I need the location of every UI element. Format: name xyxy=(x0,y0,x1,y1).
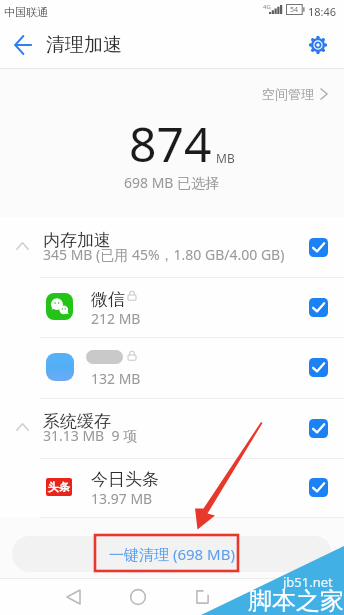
button[interactable]: Selected xyxy=(309,478,328,497)
staticText: 132 MB xyxy=(91,369,141,388)
button[interactable]: 内存加速 xyxy=(0,217,344,277)
button[interactable]: 微信 xyxy=(0,277,344,337)
staticText: 4G xyxy=(263,3,271,11)
staticText: 今日头条 xyxy=(91,469,159,490)
staticText: 空间管理 xyxy=(262,86,314,102)
button[interactable]: Selected xyxy=(309,298,328,317)
staticText: 头条 xyxy=(48,480,70,494)
button[interactable]: Back xyxy=(59,583,87,611)
button[interactable]: Selected xyxy=(309,358,328,377)
staticText: 54 xyxy=(290,5,299,15)
button[interactable]: Recents xyxy=(188,583,216,611)
staticText: 清理加速 xyxy=(46,33,122,57)
staticText: 212 MB xyxy=(91,309,141,328)
button[interactable]: Home xyxy=(124,583,152,611)
button[interactable]: Selected xyxy=(309,238,328,257)
staticText: 345 MB (已用 45%，1.80 GB/4.00 GB) xyxy=(43,245,285,264)
staticText: MB xyxy=(216,150,235,166)
staticText: 内存加速 xyxy=(43,230,111,251)
button[interactable]: 头条 xyxy=(0,458,344,517)
staticText: 系统缓存 xyxy=(43,411,111,432)
button[interactable]: 空间管理 xyxy=(254,80,336,108)
staticText: 698 MB 已选择 xyxy=(124,173,220,192)
staticText: 874 xyxy=(129,111,212,176)
staticText: 18:46 xyxy=(308,4,337,19)
staticText: jb51.net xyxy=(283,573,333,591)
staticText: 脚本之家 xyxy=(248,586,344,615)
staticText: 31.13 MB 9 项 xyxy=(43,426,138,445)
button[interactable]: Selected xyxy=(309,419,328,438)
button[interactable]: Back xyxy=(0,22,46,68)
button[interactable]: 132 MB xyxy=(0,337,344,398)
button[interactable]: 系统缓存 xyxy=(0,398,344,458)
staticText: 微信 xyxy=(91,289,125,310)
staticText: 一键清理 (698 MB) xyxy=(109,544,235,564)
staticText: 中国联通 xyxy=(4,5,48,19)
button[interactable]: Settings xyxy=(292,22,344,68)
button[interactable]: 一键清理 (698 MB) xyxy=(12,536,332,572)
staticText: 13.97 MB xyxy=(91,489,153,508)
